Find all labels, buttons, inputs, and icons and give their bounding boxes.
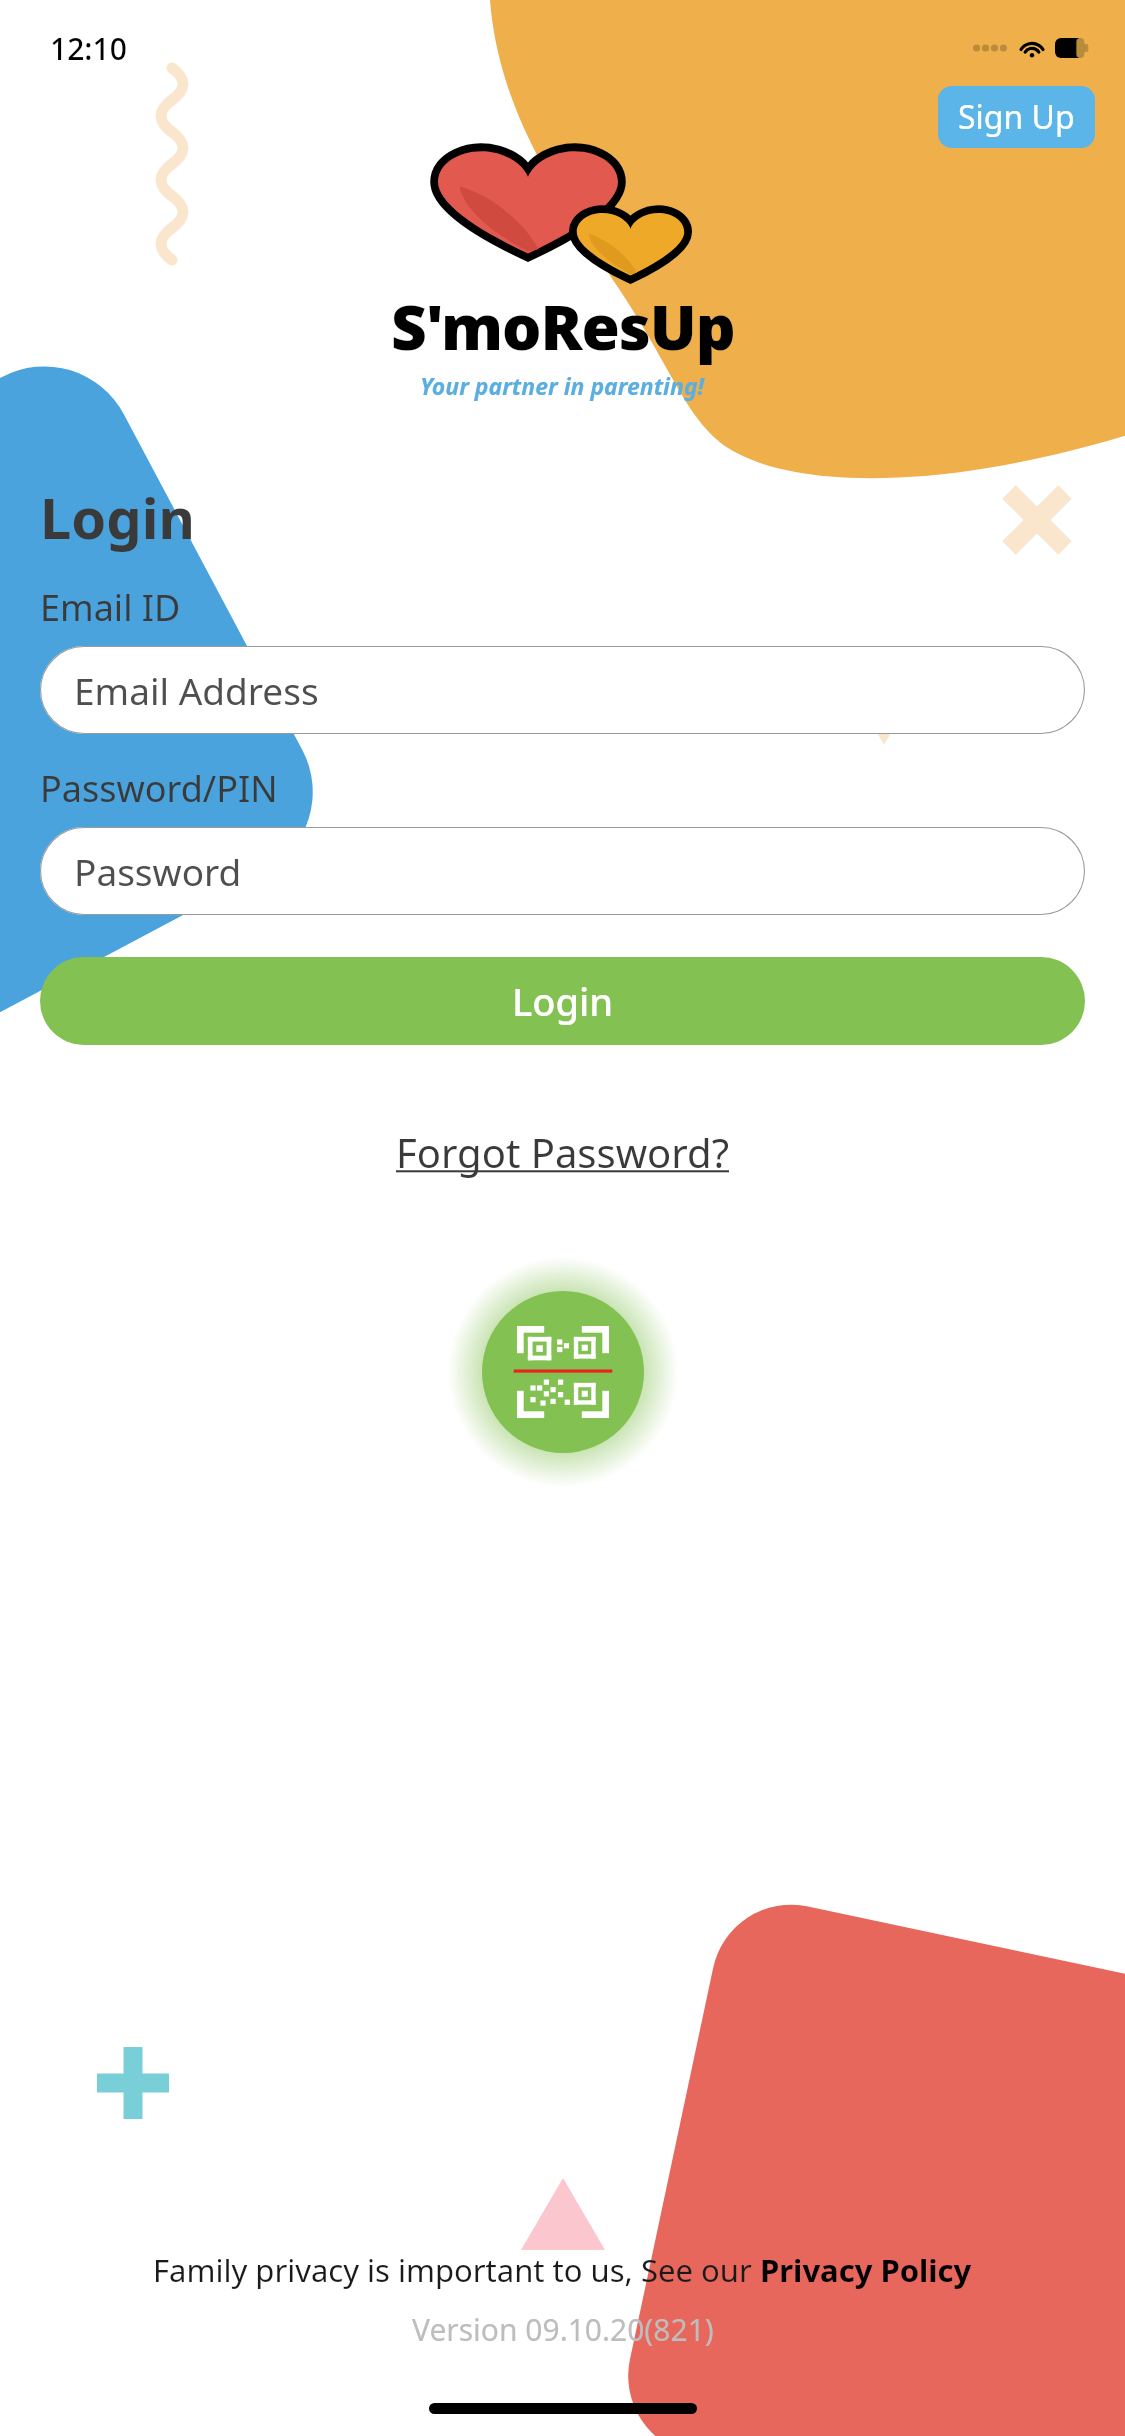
button[interactable]: Email Address (40, 646, 1085, 734)
button[interactable]: Scan QR code (482, 1291, 644, 1453)
staticText: Email Address (74, 665, 319, 715)
staticText: Sign Up (958, 95, 1075, 139)
staticText: Your partner in parenting! (420, 370, 705, 401)
staticText: Password/PIN (40, 764, 278, 813)
staticText: Forgot Password? (396, 1125, 729, 1179)
staticText: Email ID (40, 583, 181, 632)
staticText: Password (74, 846, 242, 896)
staticText: Login (512, 975, 614, 1027)
staticText: 12:10 (50, 28, 127, 69)
button[interactable]: Forgot Password? (382, 1119, 743, 1185)
staticText: S'moResUp (391, 284, 735, 368)
button[interactable]: Login (40, 957, 1085, 1045)
button[interactable]: Family privacy is important to us, See o… (153, 2249, 972, 2291)
staticText: Version 09.10.20(821) (412, 2309, 714, 2350)
button[interactable]: Password (40, 827, 1085, 915)
staticText: Family privacy is important to us, See o… (153, 2249, 760, 2291)
staticText: Privacy Policy (760, 2249, 972, 2291)
staticText: Login (40, 479, 195, 555)
button[interactable]: Sign Up (938, 86, 1095, 148)
